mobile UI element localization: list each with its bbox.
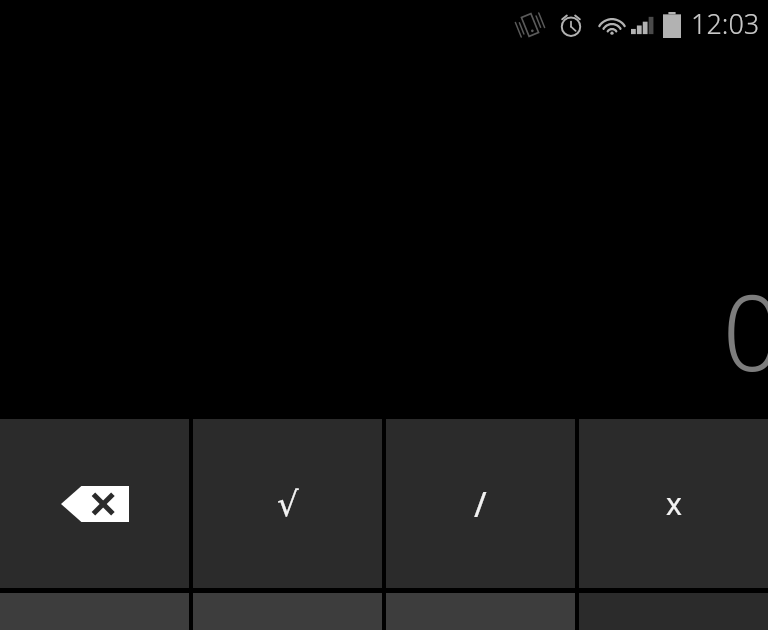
staticText: 12:03 — [691, 5, 760, 42]
button[interactable]: / — [386, 419, 575, 588]
staticText: 0 — [722, 260, 768, 402]
button[interactable]: x — [579, 419, 768, 588]
button[interactable]: √ — [193, 419, 382, 588]
staticText: x — [666, 483, 682, 524]
staticText: √ — [277, 484, 299, 524]
button[interactable]: Delete — [0, 419, 189, 588]
staticText: / — [474, 481, 487, 527]
